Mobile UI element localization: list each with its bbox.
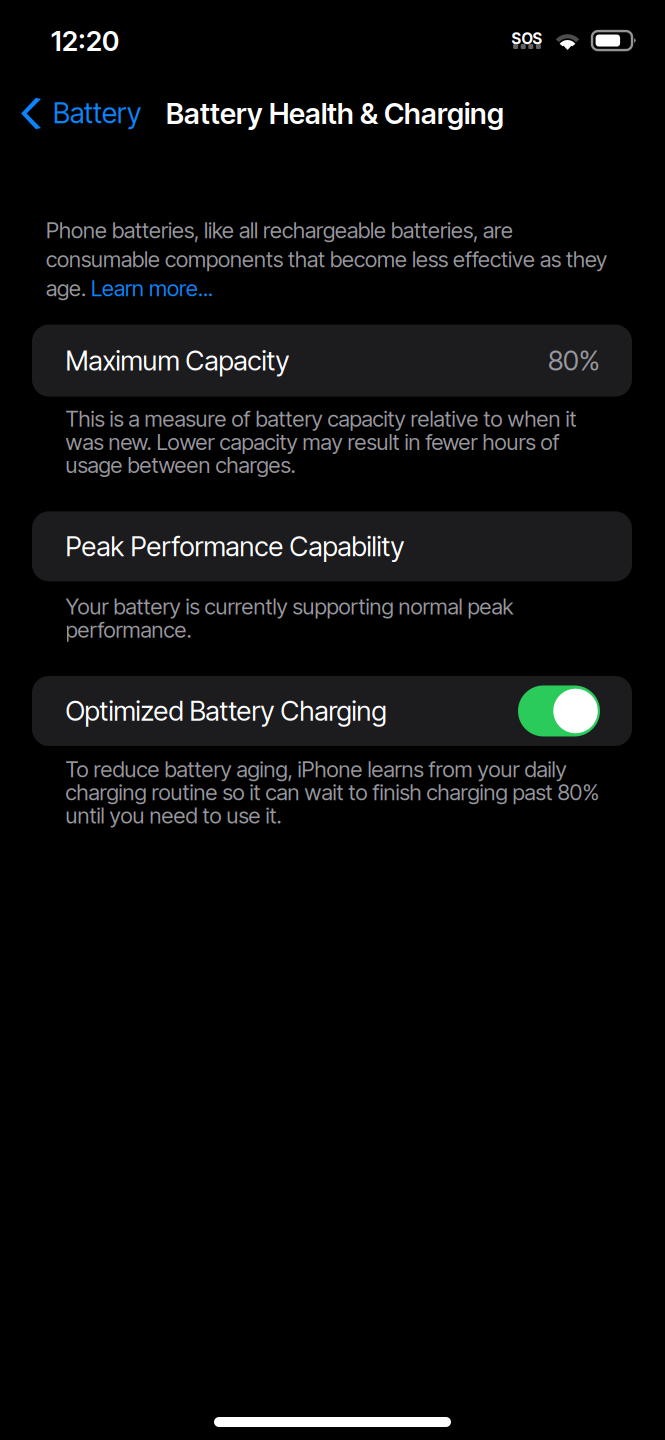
- button[interactable]: Learn more...: [91, 275, 213, 302]
- button[interactable]: Optimized Battery Charging: [0, 676, 632, 746]
- staticText: To reduce battery aging, iPhone learns f…: [65, 756, 599, 829]
- staticText: age.: [46, 275, 91, 302]
- staticText: Learn more...: [91, 275, 213, 302]
- staticText: Optimized Battery Charging: [65, 694, 386, 727]
- staticText: 80%: [548, 344, 600, 377]
- staticText: Maximum Capacity: [65, 344, 289, 377]
- staticText: SOS: [511, 29, 542, 48]
- staticText: 12:20: [51, 24, 119, 58]
- staticText: Battery Health & Charging: [166, 96, 504, 131]
- staticText: Battery: [53, 96, 141, 130]
- staticText: Peak Performance Capability: [65, 530, 404, 563]
- button[interactable]: Peak Performance Capability: [0, 511, 632, 581]
- staticText: consumable components that become less e…: [46, 246, 607, 273]
- button[interactable]: Battery: [0, 86, 153, 140]
- staticText: This is a measure of battery capacity re…: [65, 406, 576, 478]
- staticText: Your battery is currently supporting nor…: [65, 593, 513, 643]
- staticText: Phone batteries, like all rechargeable b…: [46, 217, 513, 243]
